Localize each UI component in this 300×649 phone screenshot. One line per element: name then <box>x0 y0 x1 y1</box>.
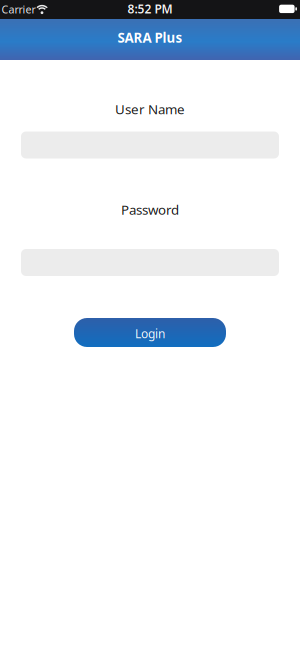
staticText: User Name <box>115 100 185 118</box>
staticText: Password <box>121 201 179 218</box>
staticText: Login <box>135 325 165 341</box>
staticText: Carrier <box>1 2 35 16</box>
button[interactable]: Login <box>74 318 226 347</box>
staticText: 8:52 PM <box>127 1 172 17</box>
staticText: SARA Plus <box>117 29 182 46</box>
